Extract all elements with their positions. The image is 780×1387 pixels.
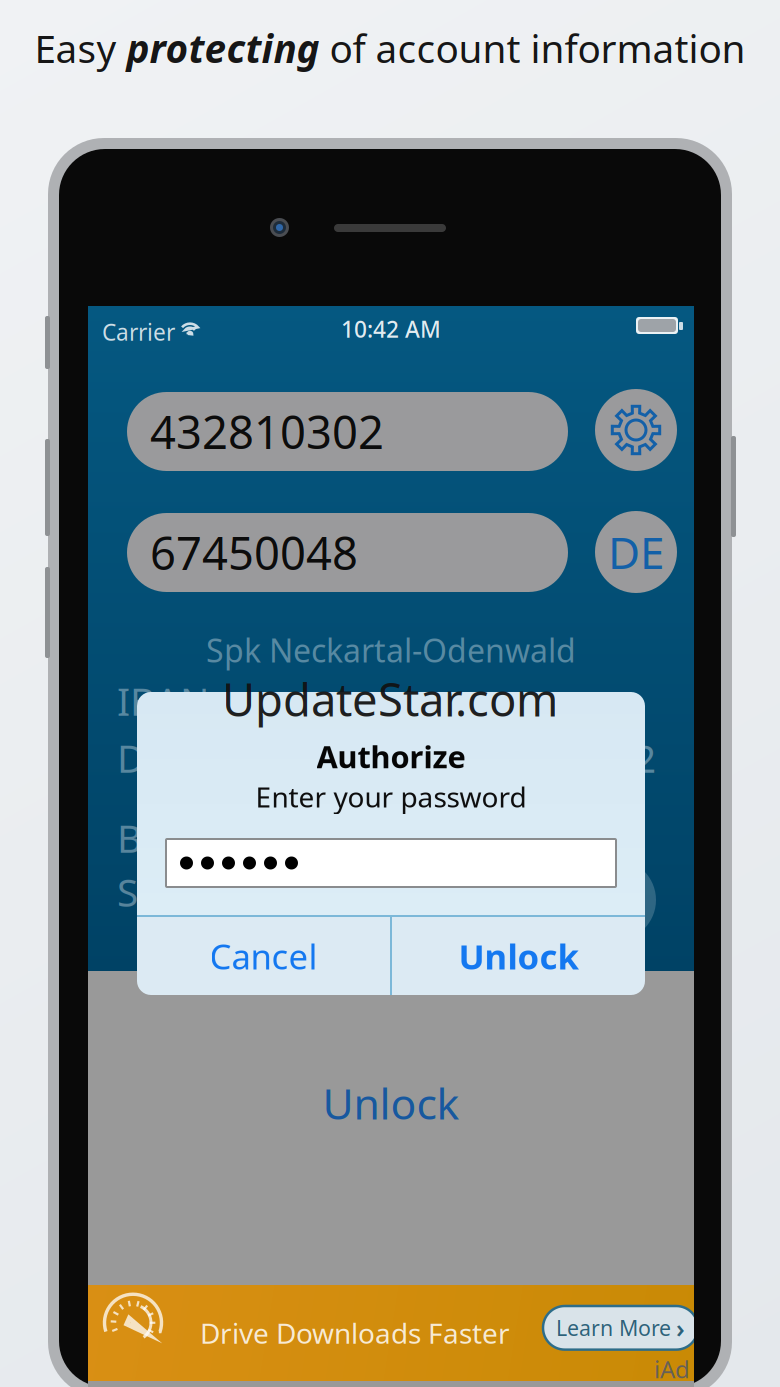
staticText: Learn More xyxy=(556,1314,671,1342)
staticText: Authorize xyxy=(316,736,465,777)
button[interactable]: 432810302 xyxy=(127,392,568,471)
staticText: Unlock xyxy=(322,1075,459,1131)
button[interactable]: Unlock xyxy=(392,917,645,995)
staticText: SOLADES1MOS xyxy=(117,866,391,917)
staticText: UpdateStar.com xyxy=(222,669,558,729)
button[interactable]: 67450048 xyxy=(127,513,568,592)
staticText: 432810302 xyxy=(150,401,384,462)
staticText: Easy protecting of account information xyxy=(34,22,745,74)
staticText: BIC xyxy=(117,812,179,863)
staticText: Drive Downloads Faster xyxy=(200,1314,510,1352)
button[interactable]: Cancel xyxy=(137,917,390,995)
staticText: DE xyxy=(608,523,664,581)
staticText: 67450048 xyxy=(150,522,358,583)
staticText: Enter your password xyxy=(255,778,526,815)
staticText: Carrier xyxy=(102,317,175,347)
staticText: IBAN xyxy=(117,675,209,726)
staticText: DE14 6745 0048 0432 8103 02 xyxy=(117,732,656,783)
staticText: iAd xyxy=(654,1353,690,1385)
staticText: 10:42 AM xyxy=(341,314,441,344)
staticText: Cancel xyxy=(209,933,317,979)
staticText: › xyxy=(676,1311,685,1345)
button[interactable]: Unlock xyxy=(88,1072,694,1134)
staticText: Spk Neckartal-Odenwald xyxy=(206,629,576,671)
button[interactable]: Settings xyxy=(595,389,677,471)
button[interactable]: Learn More xyxy=(543,1306,698,1350)
button[interactable]: Select country DE xyxy=(595,511,677,593)
staticText: Unlock xyxy=(458,933,578,979)
